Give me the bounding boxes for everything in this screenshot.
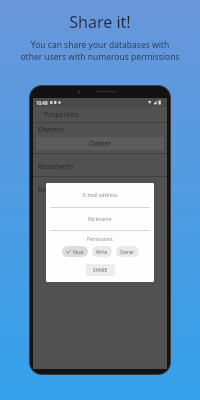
staticText: Read/write <box>38 162 74 172</box>
staticText: Owner <box>89 139 112 149</box>
button[interactable]: Properties <box>33 107 167 122</box>
staticText: 10:48 <box>36 100 48 106</box>
staticText: Properties <box>44 110 78 120</box>
staticText: Nickname <box>88 216 112 223</box>
staticText: SHARE <box>93 267 108 273</box>
staticText: Owner <box>120 249 135 255</box>
staticText: You can share your databases with other … <box>19 39 181 63</box>
staticText: Share it! <box>69 11 131 33</box>
staticText: Owners <box>38 125 64 135</box>
button[interactable]: Nickname <box>46 208 154 230</box>
staticText: Write <box>96 249 108 255</box>
staticText: Read <box>73 249 84 255</box>
button[interactable]: Owner <box>36 137 164 150</box>
staticText: Permissions <box>87 236 113 242</box>
staticText: Re <box>38 185 47 195</box>
staticText: E-mail address <box>83 192 118 199</box>
button[interactable]: Read <box>62 246 88 257</box>
button[interactable]: SHARE <box>86 264 115 276</box>
button[interactable]: Write <box>92 246 112 257</box>
button[interactable]: E-mail address <box>46 183 154 207</box>
button[interactable]: Owner <box>116 246 139 257</box>
